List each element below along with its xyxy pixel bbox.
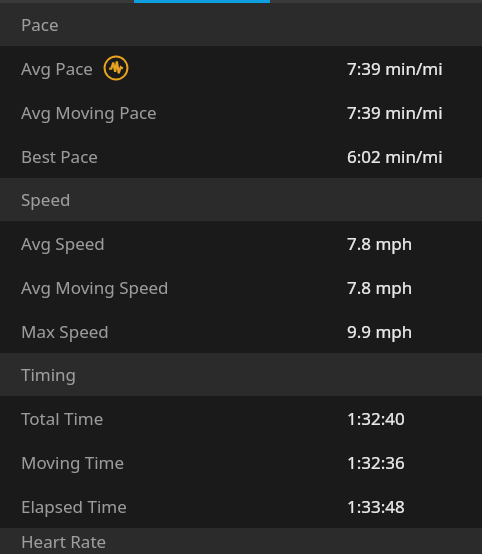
staticText: Moving Time — [21, 451, 125, 474]
button[interactable]: Moving Time — [0, 440, 482, 484]
staticText: 7:39 min/mi — [347, 57, 443, 80]
staticText: Avg Moving Speed — [21, 276, 169, 299]
staticText: Total Time — [21, 407, 104, 430]
button[interactable]: Avg Moving Speed — [0, 265, 482, 309]
button[interactable]: Avg Pace — [0, 46, 482, 90]
button[interactable]: Max Speed — [0, 309, 482, 353]
button[interactable]: Best Pace — [0, 134, 482, 178]
staticText: 7.8 mph — [347, 276, 413, 299]
button[interactable]: Avg Moving Pace — [0, 90, 482, 134]
staticText: 7.8 mph — [347, 232, 413, 255]
staticText: Avg Speed — [21, 232, 105, 255]
button[interactable]: Avg Speed — [0, 221, 482, 265]
staticText: Speed — [21, 188, 71, 211]
staticText: 7:39 min/mi — [347, 101, 443, 124]
staticText: Max Speed — [21, 320, 109, 343]
staticText: Elapsed Time — [21, 495, 127, 518]
staticText: Heart Rate — [21, 530, 107, 553]
staticText: Avg Moving Pace — [21, 101, 157, 124]
staticText: 9.9 mph — [347, 320, 413, 343]
staticText: 6:02 min/mi — [347, 145, 443, 168]
button[interactable]: Total Time — [0, 396, 482, 440]
staticText: 1:33:48 — [347, 495, 405, 518]
staticText: 1:32:40 — [347, 407, 405, 430]
staticText: Best Pace — [21, 145, 98, 168]
staticText: Timing — [21, 363, 77, 386]
staticText: Pace — [21, 13, 59, 36]
staticText: 1:32:36 — [347, 451, 405, 474]
staticText: Avg Pace — [21, 57, 93, 80]
other: Pace record badge — [103, 55, 129, 81]
button[interactable]: Elapsed Time — [0, 484, 482, 528]
